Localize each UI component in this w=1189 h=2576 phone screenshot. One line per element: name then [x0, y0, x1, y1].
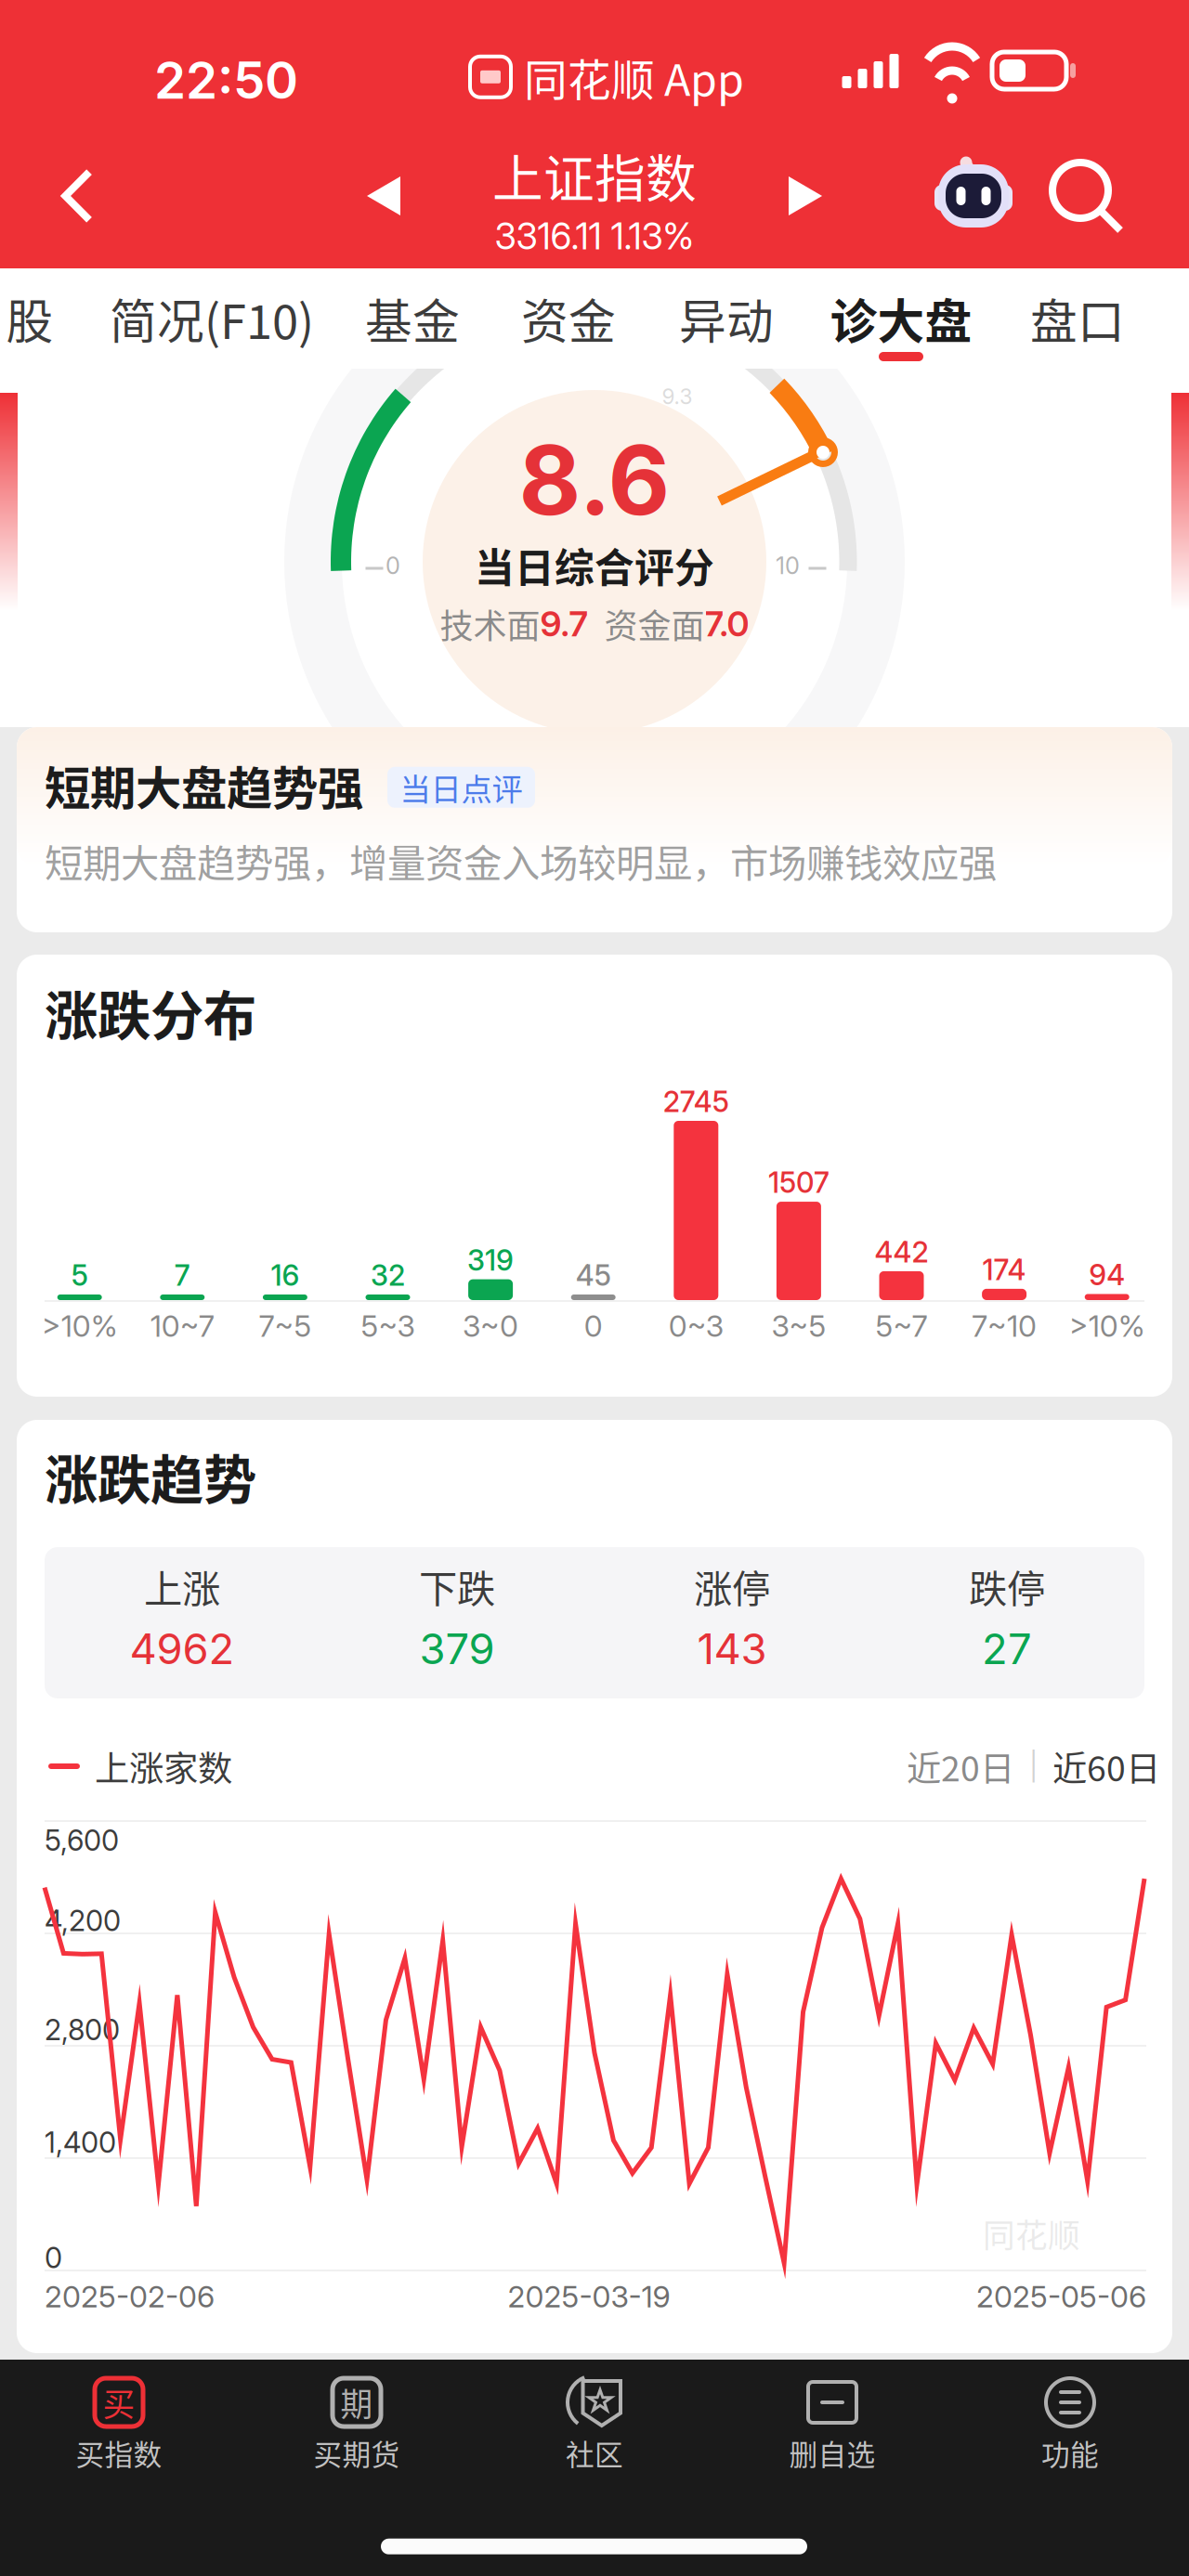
- staticText: 10~7: [150, 1308, 214, 1344]
- staticText: 22:50: [154, 49, 298, 111]
- staticText: 0: [584, 1308, 603, 1344]
- staticText: 0: [45, 2241, 62, 2275]
- staticText: 2025-03-19: [508, 2279, 670, 2315]
- button[interactable]: 资金: [503, 268, 634, 369]
- staticText: 2745: [663, 1085, 729, 1119]
- staticText: >10%: [1069, 1308, 1145, 1344]
- staticText: 5: [71, 1258, 88, 1293]
- staticText: 27: [982, 1623, 1032, 1674]
- staticText: 技术面: [440, 600, 540, 648]
- button[interactable]: Search: [1040, 151, 1130, 241]
- button[interactable]: Next index: [764, 154, 847, 238]
- staticText: 买期货: [314, 2432, 400, 2473]
- staticText: 期: [340, 2379, 373, 2426]
- staticText: 涨跌分布: [45, 973, 256, 1050]
- staticText: 资金面: [604, 600, 705, 648]
- button[interactable]: 诊大盘: [813, 268, 989, 369]
- staticText: 同花顺 App: [524, 46, 744, 108]
- staticText: 9.7: [540, 603, 588, 645]
- button[interactable]: AI assistant: [929, 151, 1018, 241]
- button[interactable]: 删自选: [713, 2360, 951, 2517]
- button[interactable]: Previous index: [342, 154, 425, 238]
- staticText: 5~3: [361, 1308, 415, 1344]
- staticText: |: [1014, 1750, 1052, 1783]
- staticText: 319: [467, 1243, 514, 1277]
- staticText: 45: [576, 1258, 611, 1293]
- staticText: 上涨家数: [95, 1741, 232, 1791]
- staticText: 功能: [1041, 2432, 1099, 2473]
- staticText: 涨跌趋势: [45, 1438, 256, 1515]
- staticText: 10: [776, 551, 800, 580]
- staticText: 1,400: [45, 2125, 116, 2160]
- staticText: 近60日: [1052, 1741, 1160, 1791]
- staticText: 买: [103, 2379, 135, 2426]
- staticText: 盘口: [1030, 284, 1125, 353]
- staticText: 近20日: [907, 1741, 1014, 1791]
- staticText: 基金: [365, 284, 460, 353]
- staticText: 1507: [768, 1165, 829, 1200]
- button[interactable]: 期: [238, 2360, 476, 2517]
- staticText: 涨停: [694, 1558, 770, 1614]
- staticText: 当日点评: [400, 765, 523, 810]
- staticText: 资金: [521, 284, 616, 353]
- staticText: 跌停: [969, 1558, 1045, 1614]
- staticText: 2025-05-06: [976, 2279, 1146, 2315]
- staticText: 简况(F10): [110, 284, 314, 353]
- staticText: 3~5: [771, 1308, 826, 1344]
- staticText: 7~5: [259, 1308, 312, 1344]
- staticText: 2025-02-06: [45, 2279, 215, 2315]
- staticText: 社区: [566, 2432, 623, 2473]
- staticText: 143: [697, 1623, 767, 1674]
- staticText: 379: [419, 1623, 495, 1674]
- staticText: 5~7: [875, 1308, 928, 1344]
- staticText: 7: [174, 1258, 190, 1293]
- staticText: 当日综合评分: [475, 536, 714, 594]
- staticText: 下跌: [419, 1558, 495, 1614]
- staticText: 异动: [679, 284, 774, 353]
- staticText: 短期大盘趋势强，增量资金入场较明显，市场赚钱效应强: [45, 833, 997, 889]
- staticText: 94: [1089, 1258, 1125, 1292]
- button[interactable]: 社区: [476, 2360, 713, 2517]
- staticText: 上证指数: [492, 138, 697, 212]
- button[interactable]: 异动: [661, 268, 791, 369]
- button[interactable]: 盘口: [1013, 268, 1143, 369]
- staticText: 同花顺: [983, 2210, 1080, 2257]
- button[interactable]: 简况(F10): [105, 268, 319, 369]
- staticText: 4,200: [45, 1904, 121, 1938]
- staticText: 3316.11 1.13%: [495, 215, 694, 258]
- staticText: 8.6: [519, 422, 670, 538]
- staticText: 7~10: [972, 1308, 1037, 1344]
- staticText: 删自选: [789, 2432, 875, 2473]
- staticText: 442: [875, 1235, 928, 1269]
- staticText: 32: [371, 1258, 405, 1293]
- staticText: 诊大盘: [830, 284, 972, 353]
- staticText: 0: [385, 551, 400, 580]
- button[interactable]: 基金: [347, 268, 477, 369]
- staticText: 3~0: [463, 1308, 518, 1344]
- button[interactable]: 买: [0, 2360, 238, 2517]
- button[interactable]: 功能: [951, 2360, 1189, 2517]
- staticText: 174: [982, 1252, 1026, 1287]
- button[interactable]: Back: [33, 151, 123, 241]
- staticText: 9.3: [662, 384, 692, 409]
- staticText: >10%: [42, 1308, 118, 1344]
- staticText: 2,800: [45, 2013, 120, 2047]
- staticText: 上涨: [144, 1558, 220, 1614]
- staticText: 7.0: [705, 603, 749, 645]
- staticText: 4962: [130, 1623, 235, 1674]
- staticText: 5,600: [45, 1823, 119, 1858]
- staticText: 买指数: [76, 2432, 162, 2473]
- staticText: 0~3: [669, 1308, 723, 1344]
- staticText: 16: [271, 1258, 299, 1293]
- staticText: 股: [6, 284, 53, 353]
- staticText: 短期大盘趋势强: [45, 752, 363, 818]
- button[interactable]: 股: [0, 268, 85, 369]
